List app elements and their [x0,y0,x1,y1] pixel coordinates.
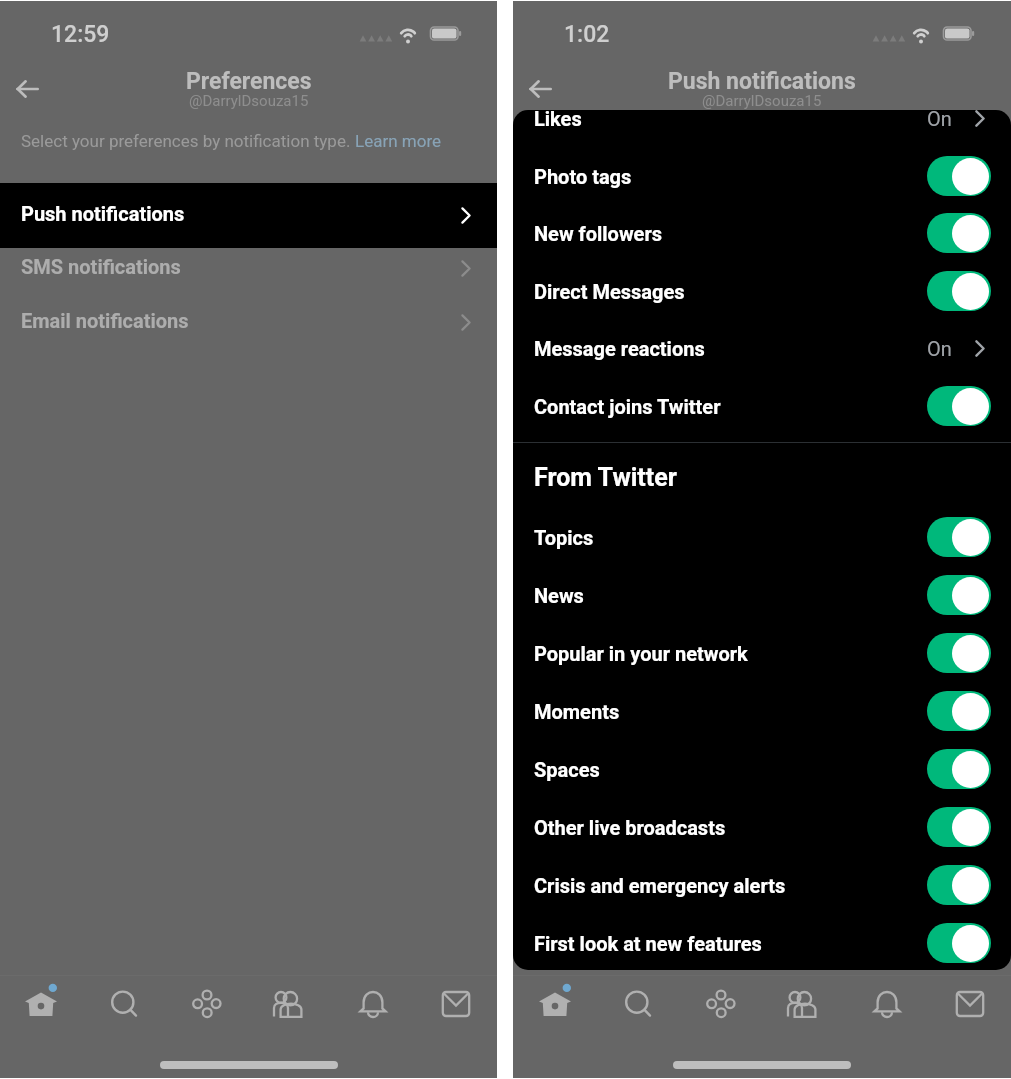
staticText: On [927,337,952,360]
button[interactable]: Search [596,976,679,1032]
staticText: Photo tags [534,165,632,188]
button[interactable]: Crisis and emergency alerts [513,856,1011,914]
staticText: On [927,110,952,130]
button[interactable]: Other live broadcasts [513,798,1011,856]
button[interactable]: SMS notifications [0,241,497,295]
button[interactable]: New followers [513,204,1011,262]
staticText: Other live broadcasts [534,816,726,839]
button[interactable]: Search [82,976,165,1032]
staticText: Contact joins Twitter [534,395,721,418]
staticText: Spaces [534,758,600,781]
button[interactable]: Home [513,976,596,1032]
button[interactable]: Back [6,69,48,109]
staticText: 12:59 [51,21,110,48]
button[interactable]: Topics [513,508,1011,566]
button[interactable]: Messages [414,976,497,1032]
button[interactable]: Notifications [845,976,928,1032]
button[interactable]: Message reactions [513,319,1011,377]
button[interactable]: Moments [513,682,1011,740]
staticText: Message reactions [534,337,705,360]
staticText: From Twitter [534,463,677,492]
button[interactable]: Push notifications [0,183,497,248]
button[interactable]: Spaces [513,740,1011,798]
staticText: New followers [534,222,662,245]
staticText: SMS notifications [21,255,181,278]
staticText: 1:02 [564,21,610,48]
button[interactable]: Back [519,69,561,109]
staticText: Push notifications [21,202,185,225]
staticText: Push notifications [668,68,856,95]
staticText: First look at new features [534,932,762,955]
staticText: Preferences [186,68,312,95]
staticText: Moments [534,700,620,723]
staticText: Crisis and emergency alerts [534,874,786,897]
button[interactable]: Spaces [679,976,762,1032]
button[interactable]: Email notifications [0,295,497,349]
staticText: Topics [534,526,594,549]
staticText: @DarrylDsouza15 [702,92,822,110]
button[interactable]: First look at new features [513,914,1011,970]
button[interactable]: Likes [513,110,1011,147]
staticText: News [534,584,584,607]
staticText: Direct Messages [534,280,685,303]
staticText: Likes [534,110,582,130]
button[interactable]: Learn more [355,131,442,151]
button[interactable]: News [513,566,1011,624]
staticText: @DarrylDsouza15 [189,92,309,110]
button[interactable]: Communities [762,976,845,1032]
staticText: Email notifications [21,309,189,332]
button[interactable]: Direct Messages [513,262,1011,320]
button[interactable]: Popular in your network [513,624,1011,682]
button[interactable]: Spaces [165,976,248,1032]
button[interactable]: Home [0,976,82,1032]
staticText: Popular in your network [534,642,748,665]
button[interactable]: Photo tags [513,147,1011,205]
button[interactable]: Notifications [331,976,414,1032]
button[interactable]: Messages [928,976,1011,1032]
button[interactable]: Communities [248,976,331,1032]
button[interactable]: Contact joins Twitter [513,377,1011,435]
staticText: Select your preferences by notification … [21,131,355,151]
